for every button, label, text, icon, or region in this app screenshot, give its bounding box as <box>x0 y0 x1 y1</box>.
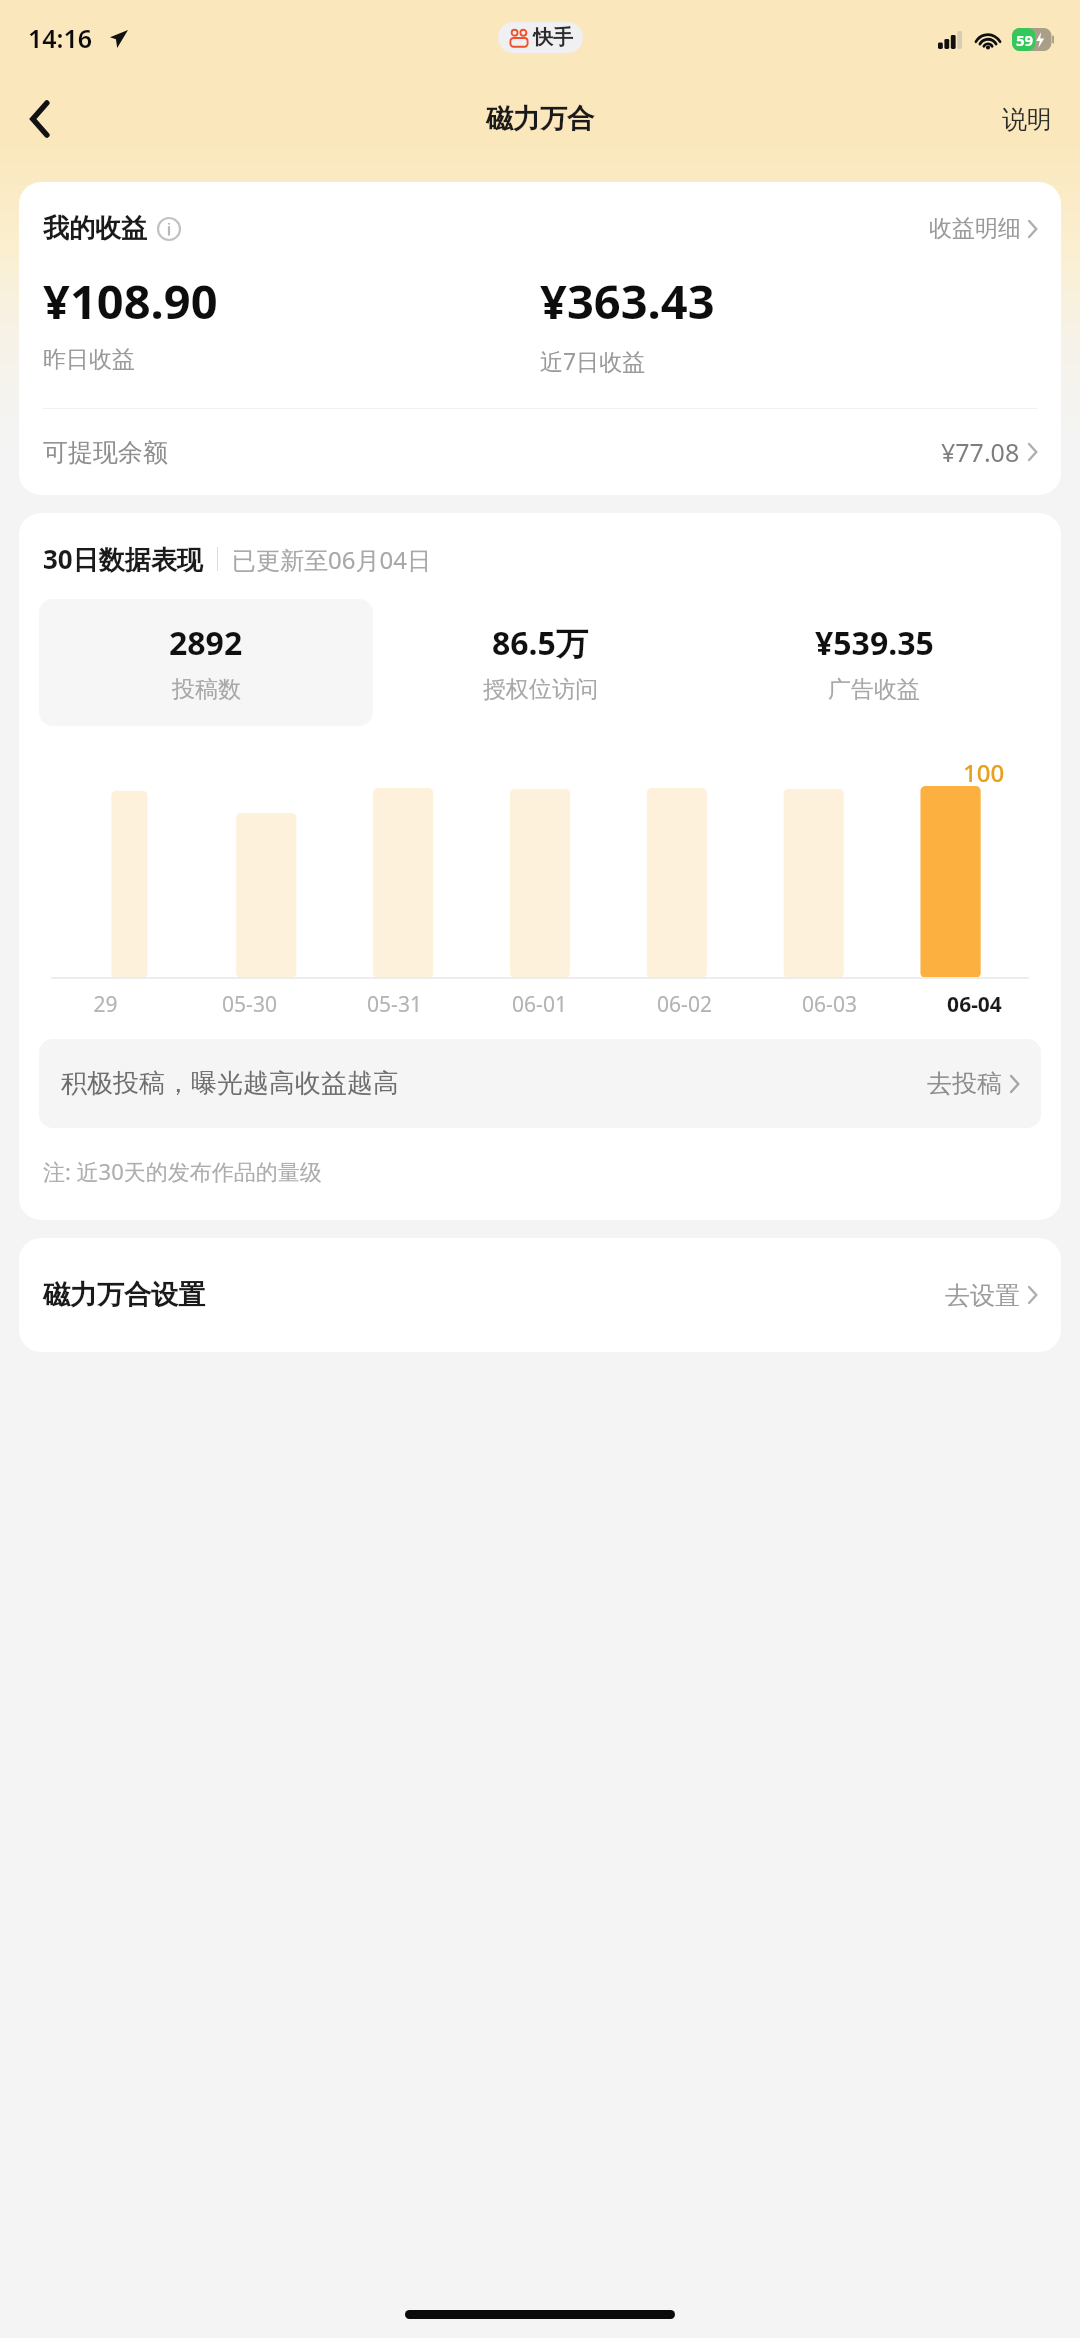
staticText: 去投稿 <box>927 1068 1002 1099</box>
staticText: 注: 近30天的发布作品的量级 <box>43 1156 322 1186</box>
staticText: 近7日收益 <box>540 345 646 376</box>
button[interactable]: 86.5万 <box>373 599 707 726</box>
staticText: 磁力万合 <box>486 102 594 136</box>
staticText: 积极投稿，曝光越高收益越高 <box>61 1067 399 1100</box>
staticText: 收益明细 <box>929 214 1021 243</box>
staticText: 86.5万 <box>492 621 588 665</box>
staticText: 06-04 <box>947 990 1002 1019</box>
button[interactable]: 说明 <box>988 94 1066 145</box>
button[interactable]: 说明 <box>156 216 182 242</box>
button[interactable]: 积极投稿，曝光越高收益越高 <box>39 1039 1041 1128</box>
staticText: ¥539.35 <box>815 621 934 665</box>
staticText: 授权位访问 <box>483 675 598 704</box>
button[interactable]: 返回 <box>12 91 68 147</box>
staticText: 59 <box>1016 30 1034 50</box>
staticText: 去设置 <box>945 1280 1020 1311</box>
staticText: 05-30 <box>222 990 277 1019</box>
staticText: 说明 <box>1002 104 1052 135</box>
button[interactable]: 收益明细 <box>927 208 1039 249</box>
staticText: 06-01 <box>512 990 567 1019</box>
staticText: 可提现余额 <box>43 437 168 468</box>
staticText: 06-03 <box>802 990 857 1019</box>
staticText: 已更新至06月04日 <box>232 543 431 576</box>
button[interactable]: 磁力万合设置 <box>19 1238 1061 1352</box>
button[interactable]: ¥539.35 <box>707 599 1041 726</box>
staticText: 06-02 <box>657 990 712 1019</box>
staticText: 快手 <box>533 25 573 50</box>
staticText: ¥77.08 <box>941 435 1020 469</box>
button[interactable]: 2892 <box>39 599 373 726</box>
staticText: 广告收益 <box>828 675 920 704</box>
staticText: 05-31 <box>367 990 422 1019</box>
staticText: 100 <box>963 756 1005 789</box>
staticText: 14:16 <box>28 21 93 55</box>
staticText: ¥363.43 <box>540 269 715 333</box>
staticText: 我的收益 <box>43 212 147 245</box>
staticText: 29 <box>93 990 118 1019</box>
staticText: 磁力万合设置 <box>43 1278 205 1312</box>
staticText: ¥108.90 <box>43 269 218 333</box>
button[interactable]: 可提现余额 <box>19 409 1061 495</box>
staticText: 投稿数 <box>172 675 241 704</box>
staticText: 30日数据表现 <box>43 541 203 577</box>
staticText: 昨日收益 <box>43 345 135 374</box>
staticText: 2892 <box>169 621 243 665</box>
